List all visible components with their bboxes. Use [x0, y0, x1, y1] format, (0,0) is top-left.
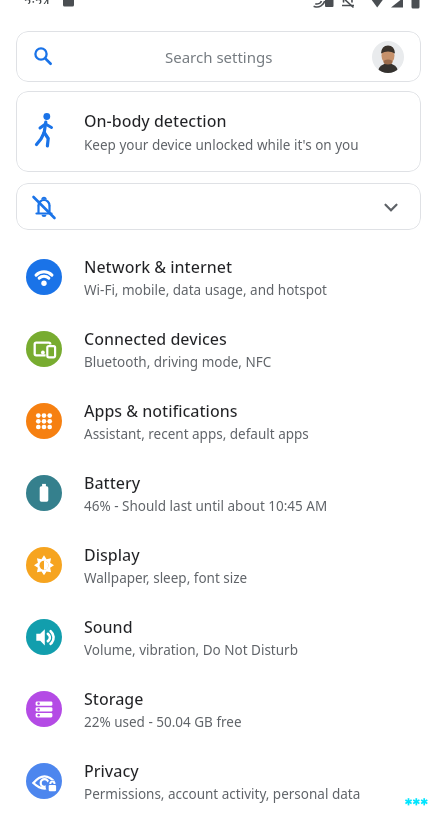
staticText: Connected devices — [84, 328, 227, 350]
staticText: Keep your device unlocked while it's on … — [84, 136, 359, 154]
staticText: Sound — [84, 616, 133, 638]
staticText: Display — [84, 544, 140, 566]
button[interactable]: Battery — [0, 457, 437, 529]
staticText: Storage — [84, 688, 144, 710]
button[interactable]: Network & internet — [0, 241, 437, 313]
staticText: On-body detection — [84, 110, 227, 132]
staticText: Assistant, recent apps, default apps — [84, 425, 309, 443]
staticText: Volume, vibration, Do Not Disturb — [84, 641, 298, 659]
staticText: Wi-Fi, mobile, data usage, and hotspot — [84, 281, 327, 299]
staticText: Wallpaper, sleep, font size — [84, 569, 248, 587]
staticText: Privacy — [84, 760, 139, 782]
button[interactable]: Storage — [0, 673, 437, 745]
button[interactable]: Sound — [0, 601, 437, 673]
button[interactable]: On-body detection — [16, 91, 421, 172]
staticText: Search settings — [165, 47, 273, 67]
button[interactable]: Connected devices — [0, 313, 437, 385]
button[interactable]: Privacy — [0, 745, 437, 817]
button[interactable]: Apps & notifications — [0, 385, 437, 457]
staticText: Permissions, account activity, personal … — [84, 785, 361, 803]
staticText: 46% - Should last until about 10:45 AM — [84, 497, 328, 515]
staticText: Network & internet — [84, 256, 233, 278]
staticText: Battery — [84, 472, 141, 494]
staticText: 22% used - 50.04 GB free — [84, 713, 242, 731]
button[interactable]: Display — [0, 529, 437, 601]
button[interactable] — [16, 183, 421, 230]
staticText: Apps & notifications — [84, 400, 238, 422]
staticText: Bluetooth, driving mode, NFC — [84, 353, 272, 371]
staticText: 2:24 — [24, 0, 50, 4]
button[interactable]: Search settings — [16, 31, 421, 82]
